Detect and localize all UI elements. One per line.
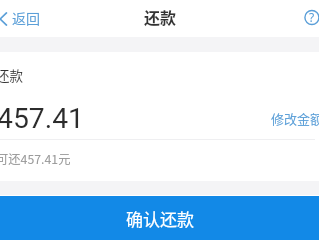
staticText: 确认还款	[126, 206, 194, 231]
staticText: 还款	[0, 65, 23, 85]
staticText: 457.41	[0, 102, 84, 135]
staticText: 可还457.41元	[0, 150, 71, 168]
button[interactable]: 返回	[0, 0, 46, 37]
button[interactable]: 确认还款	[0, 196, 319, 240]
staticText: 返回	[12, 8, 40, 28]
button[interactable]: 帮助	[298, 4, 319, 32]
button[interactable]: 修改金额	[271, 109, 319, 128]
staticText: ?	[309, 9, 315, 25]
staticText: 还款	[144, 5, 177, 28]
